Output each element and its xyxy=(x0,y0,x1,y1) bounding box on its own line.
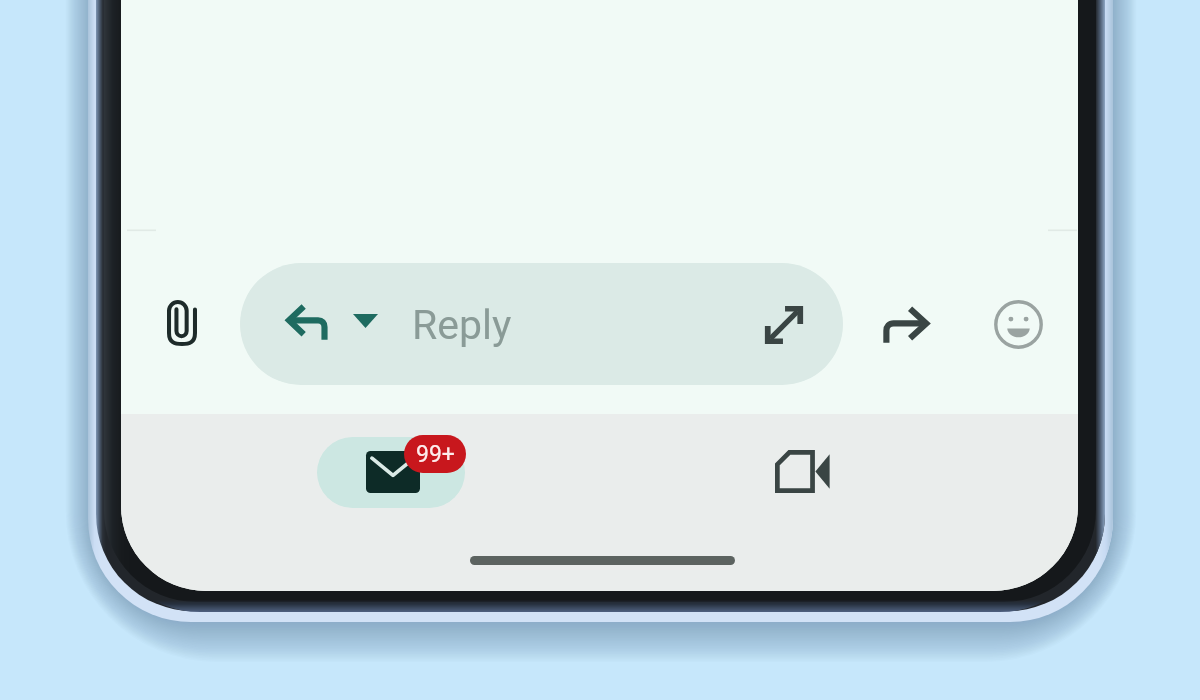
button[interactable]: Expand xyxy=(759,300,809,350)
button[interactable]: Emoji xyxy=(972,278,1064,370)
button[interactable]: Reply xyxy=(240,263,843,385)
button[interactable]: Attach file xyxy=(136,277,228,369)
staticText: 99+ xyxy=(416,441,455,468)
button[interactable]: Forward xyxy=(859,276,951,368)
staticText: Reply xyxy=(412,301,512,349)
button[interactable]: Meet xyxy=(729,436,877,507)
button[interactable]: Mail, 99 plus unread xyxy=(317,437,465,508)
